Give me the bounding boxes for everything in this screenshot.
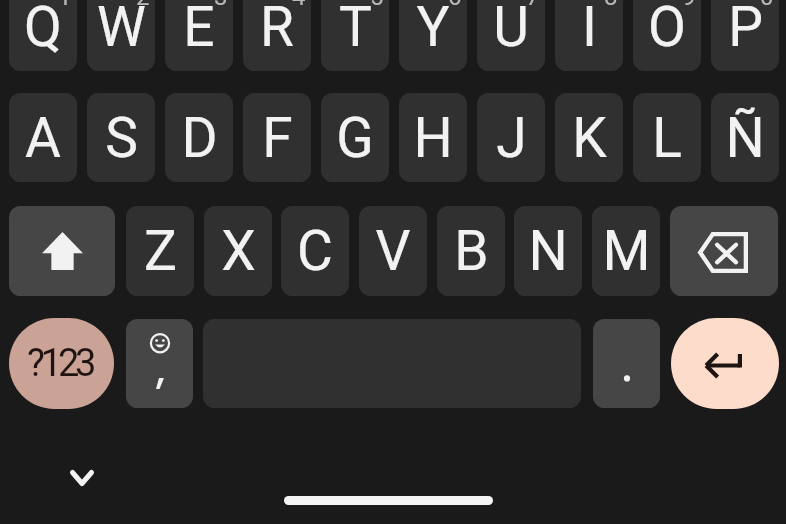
staticText: 4 bbox=[292, 0, 306, 11]
button[interactable]: Symbols bbox=[9, 318, 114, 409]
staticText: Q bbox=[24, 0, 62, 59]
staticText: L bbox=[652, 106, 682, 170]
button[interactable]: Z bbox=[126, 206, 194, 296]
staticText: W bbox=[97, 0, 146, 59]
staticText: 5 bbox=[370, 0, 384, 11]
button[interactable]: R bbox=[243, 0, 311, 71]
button[interactable]: U bbox=[477, 0, 545, 71]
staticText: D bbox=[181, 106, 218, 170]
staticText: 8 bbox=[604, 0, 618, 11]
staticText: B bbox=[454, 219, 489, 283]
staticText: T bbox=[339, 0, 372, 59]
button[interactable]: E bbox=[165, 0, 233, 71]
button[interactable]: Y bbox=[399, 0, 467, 71]
staticText: A bbox=[25, 106, 61, 170]
staticText: 6 bbox=[448, 0, 462, 11]
staticText: R bbox=[260, 0, 294, 59]
button[interactable]: G bbox=[321, 93, 389, 182]
staticText: 9 bbox=[682, 0, 696, 11]
button[interactable]: M bbox=[592, 206, 660, 296]
button[interactable]: W bbox=[87, 0, 155, 71]
staticText: G bbox=[336, 106, 374, 170]
staticText: X bbox=[221, 219, 256, 283]
button[interactable]: L bbox=[633, 93, 701, 182]
button[interactable]: T bbox=[321, 0, 389, 71]
button[interactable]: Backspace bbox=[670, 206, 778, 296]
button[interactable]: N bbox=[514, 206, 582, 296]
button[interactable]: B bbox=[437, 206, 505, 296]
staticText: S bbox=[105, 106, 138, 170]
staticText: F bbox=[262, 106, 293, 170]
staticText: P bbox=[728, 0, 763, 59]
button[interactable]: K bbox=[555, 93, 623, 182]
staticText: U bbox=[493, 0, 529, 59]
staticText: V bbox=[375, 219, 411, 283]
button[interactable]: Q bbox=[9, 0, 77, 71]
button[interactable]: Ñ bbox=[711, 93, 779, 182]
button[interactable]: P bbox=[711, 0, 779, 71]
staticText: 7 bbox=[526, 0, 540, 11]
staticText: M bbox=[602, 219, 651, 283]
staticText: Z bbox=[144, 219, 177, 283]
button[interactable]: H bbox=[399, 93, 467, 182]
button[interactable]: A bbox=[9, 93, 77, 182]
button[interactable]: Period bbox=[593, 319, 660, 408]
staticText: ?123 bbox=[27, 341, 93, 386]
staticText: Ñ bbox=[725, 106, 765, 170]
staticText: 3 bbox=[214, 0, 228, 11]
button[interactable]: I bbox=[555, 0, 623, 71]
button[interactable]: X bbox=[204, 206, 272, 296]
button[interactable]: F bbox=[243, 93, 311, 182]
button[interactable]: Hide keyboard bbox=[62, 458, 102, 498]
staticText: 2 bbox=[136, 0, 150, 11]
staticText: 0 bbox=[760, 0, 774, 11]
staticText: N bbox=[528, 219, 568, 283]
staticText: Y bbox=[416, 0, 450, 59]
button[interactable]: V bbox=[359, 206, 427, 296]
button[interactable]: S bbox=[87, 93, 155, 182]
staticText: J bbox=[496, 106, 527, 170]
button[interactable]: D bbox=[165, 93, 233, 182]
button[interactable]: Enter bbox=[671, 318, 779, 409]
staticText: E bbox=[183, 0, 215, 59]
staticText: K bbox=[572, 106, 607, 170]
button[interactable]: C bbox=[281, 206, 349, 296]
staticText: I bbox=[582, 0, 597, 59]
staticText: C bbox=[297, 219, 333, 283]
button[interactable]: O bbox=[633, 0, 701, 71]
button[interactable]: Shift bbox=[9, 206, 115, 296]
staticText: O bbox=[648, 0, 686, 59]
staticText: H bbox=[413, 106, 453, 170]
button[interactable]: J bbox=[477, 93, 545, 182]
staticText: 1 bbox=[58, 0, 72, 11]
button[interactable]: Emoji and comma bbox=[126, 319, 193, 408]
